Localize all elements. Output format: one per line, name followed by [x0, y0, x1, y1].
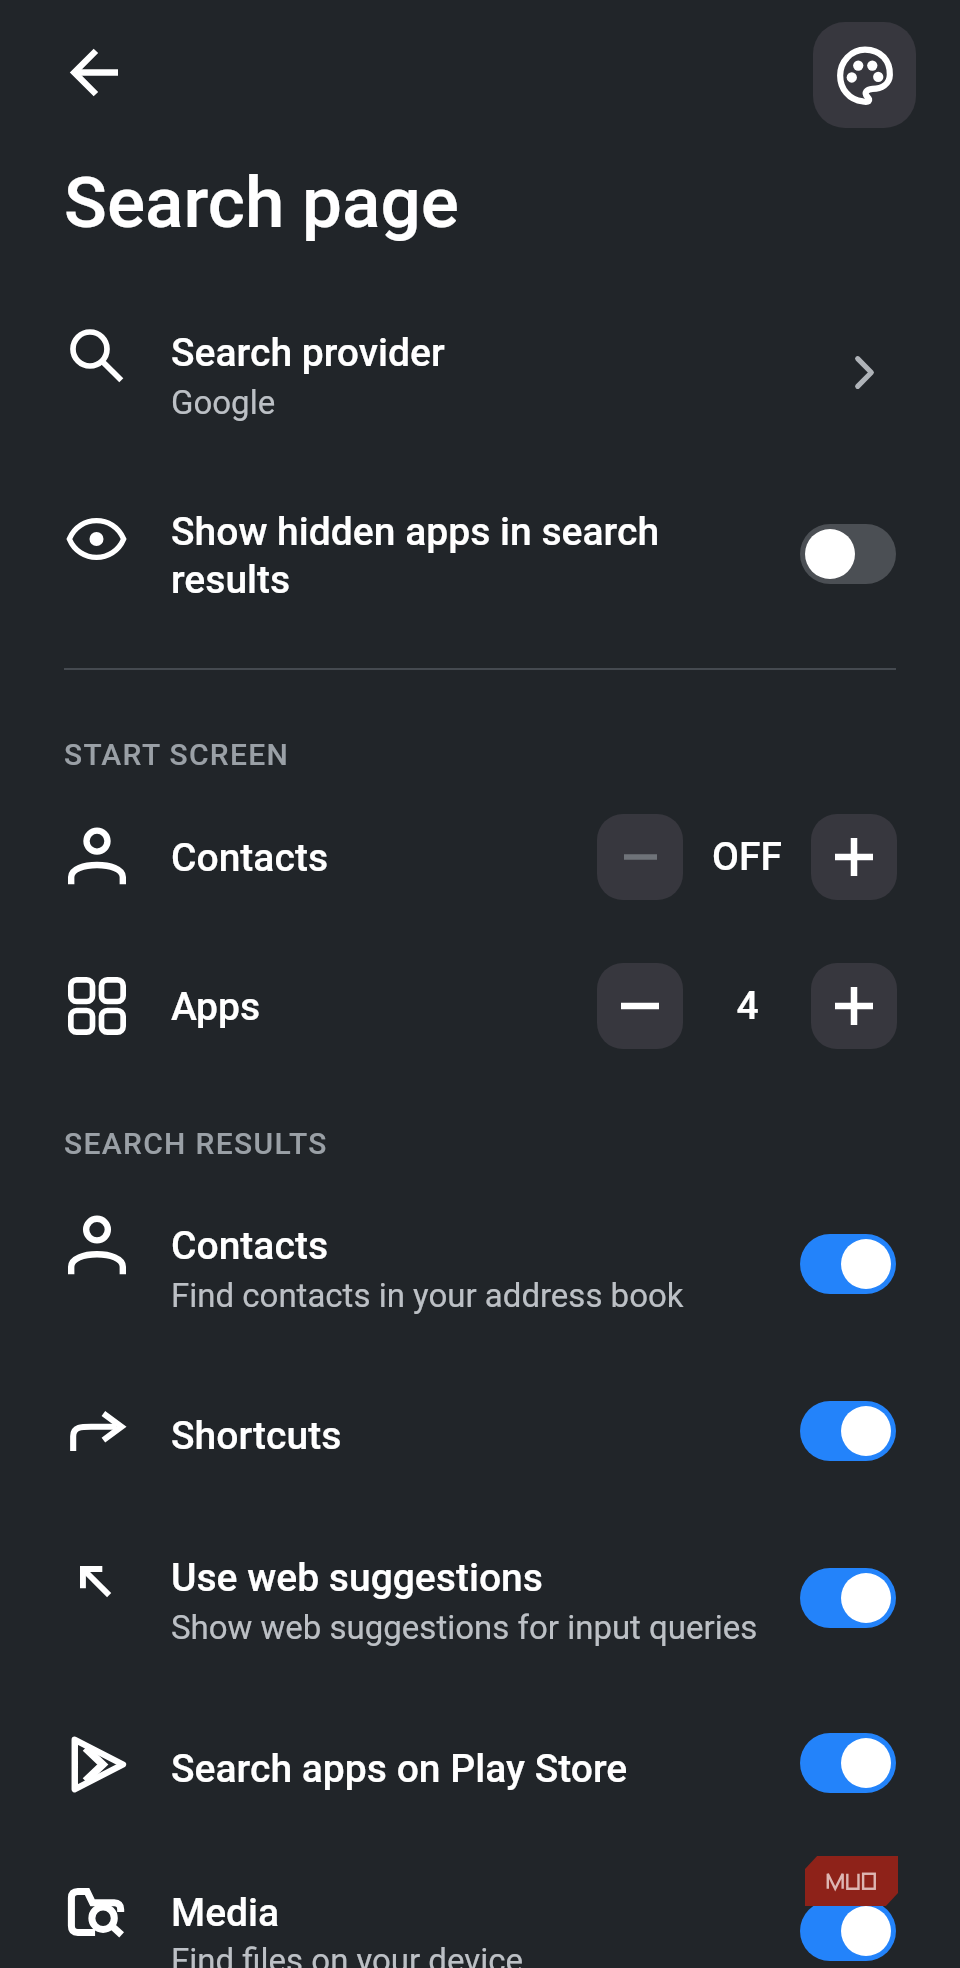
staticText: Google	[171, 383, 276, 422]
staticText: Contacts	[171, 835, 329, 881]
button[interactable]: On	[800, 1568, 896, 1628]
button[interactable]: Show hidden apps in search results	[0, 470, 960, 630]
button[interactable]: Search provider	[0, 300, 960, 450]
button[interactable]: On	[800, 1234, 896, 1294]
staticText: Search provider	[171, 330, 445, 376]
staticText: Apps	[171, 984, 261, 1030]
staticText: START SCREEN	[64, 737, 290, 772]
staticText: Contacts	[171, 1223, 329, 1269]
button[interactable]: Decrease	[597, 814, 683, 900]
button[interactable]: Media	[0, 1855, 960, 1968]
staticText: Media	[171, 1890, 280, 1936]
button[interactable]: Decrease	[597, 963, 683, 1049]
staticText: SEARCH RESULTS	[64, 1126, 328, 1161]
button[interactable]: Theme	[813, 22, 916, 128]
button[interactable]: Shortcuts	[0, 1370, 960, 1495]
button[interactable]: Back	[56, 33, 134, 111]
staticText: OFF	[712, 834, 782, 880]
button[interactable]: Contacts	[0, 1190, 960, 1335]
staticText: Search page	[64, 161, 459, 244]
button[interactable]: On	[800, 1901, 896, 1961]
button[interactable]: Search apps on Play Store	[0, 1700, 960, 1840]
button[interactable]: Off	[800, 524, 896, 584]
staticText: Show hidden apps in search results	[171, 509, 691, 603]
staticText: Find contacts in your address book	[171, 1276, 684, 1315]
staticText: 4	[736, 983, 759, 1029]
button[interactable]: Increase	[811, 963, 897, 1049]
button[interactable]: Open	[832, 340, 896, 404]
staticText: Find files on your device	[171, 1941, 523, 1968]
staticText: Use web suggestions	[171, 1555, 543, 1601]
staticText: Show web suggestions for input queries	[171, 1608, 758, 1647]
staticText: Search apps on Play Store	[171, 1746, 628, 1792]
button[interactable]: On	[800, 1401, 896, 1461]
button[interactable]: On	[800, 1733, 896, 1793]
staticText: Shortcuts	[171, 1413, 342, 1459]
button[interactable]: Increase	[811, 814, 897, 900]
button[interactable]: Use web suggestions	[0, 1520, 960, 1670]
